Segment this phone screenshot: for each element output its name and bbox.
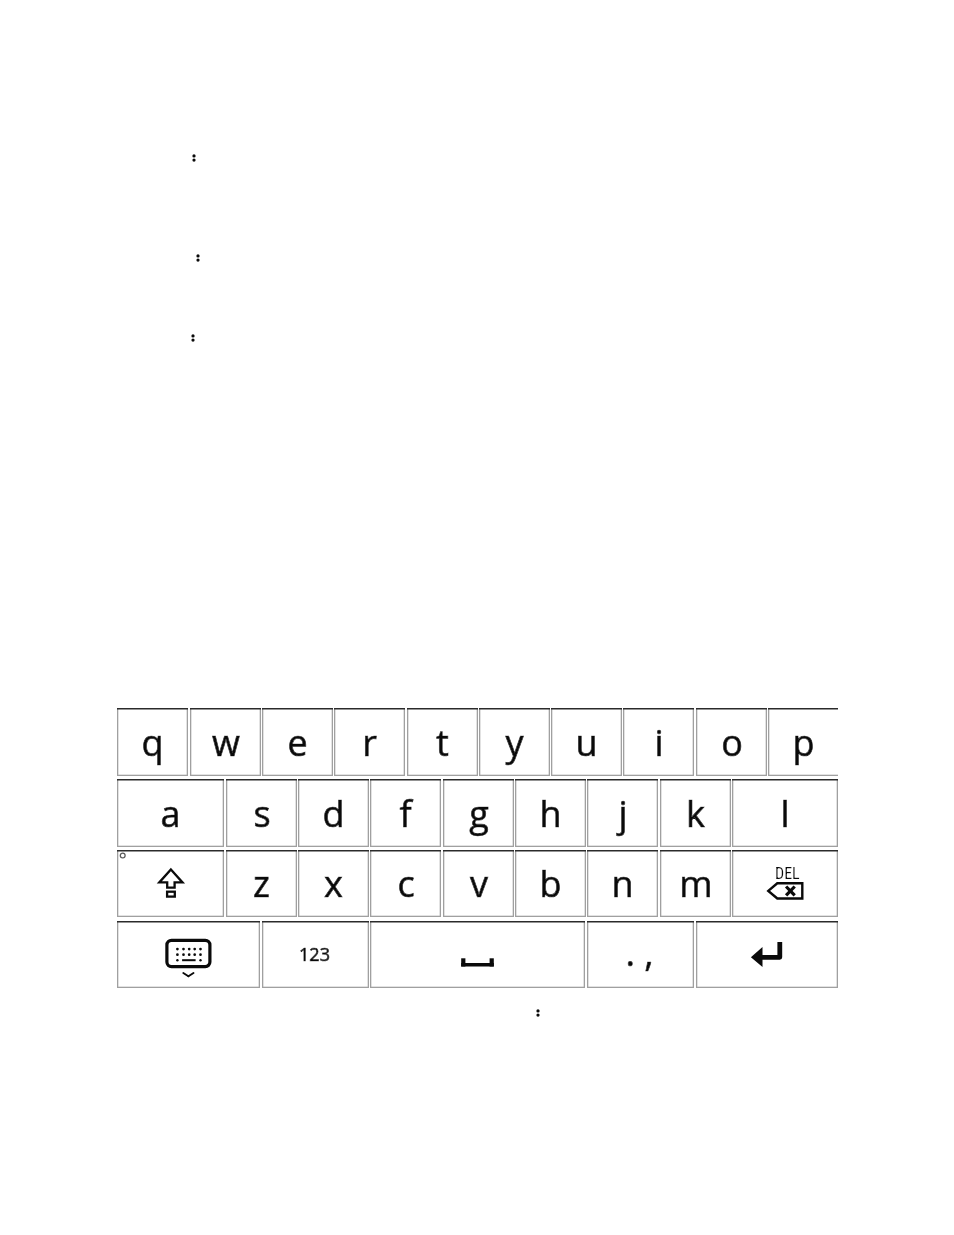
button[interactable]: y — [479, 708, 550, 776]
button[interactable]: Shift — [117, 850, 224, 917]
staticText: v — [470, 859, 488, 908]
staticText: p — [792, 718, 815, 767]
staticText: 123 — [299, 942, 330, 967]
staticText: c — [397, 859, 415, 908]
staticText: DEL — [775, 864, 800, 883]
staticText: o — [721, 718, 743, 767]
staticText: j — [618, 789, 628, 838]
staticText: t — [436, 718, 449, 767]
other: : — [187, 330, 199, 346]
button[interactable]: o — [696, 708, 767, 776]
staticText: 123 — [299, 942, 330, 967]
staticText: d — [322, 789, 345, 838]
staticText: a — [160, 789, 181, 838]
staticText: b — [539, 859, 562, 908]
staticText: f — [399, 789, 412, 838]
button[interactable]: Numbers and symbols — [262, 921, 369, 988]
button[interactable]: u — [551, 708, 622, 776]
staticText: m — [679, 859, 713, 908]
button[interactable]: h — [515, 779, 586, 847]
staticText: i — [654, 718, 664, 767]
button[interactable]: p — [768, 708, 838, 776]
button[interactable]: x — [298, 850, 369, 917]
staticText: k — [686, 789, 705, 838]
staticText: l — [780, 789, 790, 838]
staticText: o — [721, 718, 743, 767]
staticText: g — [469, 789, 489, 838]
button[interactable]: a — [117, 779, 224, 847]
button[interactable]: v — [443, 850, 514, 917]
button[interactable]: r — [334, 708, 405, 776]
staticText: t — [436, 718, 449, 767]
staticText: s — [253, 789, 271, 838]
other: : — [192, 250, 204, 266]
button[interactable]: m — [660, 850, 731, 917]
staticText: y — [505, 718, 524, 767]
staticText: g — [469, 789, 489, 838]
staticText: l — [780, 789, 790, 838]
staticText: r — [362, 718, 377, 767]
staticText: w — [212, 718, 240, 767]
button[interactable]: l — [732, 779, 838, 847]
staticText: r — [362, 718, 377, 767]
staticText: e — [287, 718, 308, 767]
button[interactable]: q — [117, 708, 188, 776]
staticText: . , — [625, 928, 654, 977]
button[interactable]: f — [370, 779, 441, 847]
staticText: x — [324, 859, 343, 908]
staticText: h — [539, 789, 562, 838]
other: : — [188, 150, 200, 166]
staticText: h — [539, 789, 562, 838]
staticText: j — [618, 789, 628, 838]
button[interactable]: Space — [370, 921, 585, 988]
button[interactable]: t — [407, 708, 478, 776]
staticText: z — [253, 859, 270, 908]
button[interactable]: b — [515, 850, 586, 917]
staticText: k — [686, 789, 705, 838]
staticText: s — [253, 789, 271, 838]
staticText: d — [322, 789, 345, 838]
staticText: p — [792, 718, 815, 767]
button[interactable]: w — [190, 708, 261, 776]
button[interactable]: g — [443, 779, 514, 847]
staticText: e — [287, 718, 308, 767]
staticText: n — [611, 859, 634, 908]
button[interactable]: e — [262, 708, 333, 776]
button[interactable]: j — [587, 779, 658, 847]
button[interactable]: k — [660, 779, 731, 847]
staticText: z — [253, 859, 270, 908]
button[interactable]: n — [587, 850, 658, 917]
button[interactable]: Enter — [696, 921, 838, 988]
staticText: n — [611, 859, 634, 908]
staticText: a — [160, 789, 181, 838]
button[interactable]: c — [370, 850, 441, 917]
staticText: q — [141, 718, 164, 767]
button[interactable]: i — [623, 708, 694, 776]
button[interactable]: Delete — [732, 850, 838, 917]
staticText: i — [654, 718, 664, 767]
staticText: x — [324, 859, 343, 908]
button[interactable]: Hide keyboard — [117, 921, 260, 988]
staticText: w — [212, 718, 240, 767]
staticText: q — [141, 718, 164, 767]
staticText: m — [679, 859, 713, 908]
staticText: . , — [625, 928, 654, 977]
staticText: y — [505, 718, 524, 767]
button[interactable]: s — [226, 779, 297, 847]
button[interactable]: Period and comma — [587, 921, 694, 988]
other: : — [532, 1005, 544, 1021]
staticText: u — [575, 718, 598, 767]
staticText: u — [575, 718, 598, 767]
button[interactable]: d — [298, 779, 369, 847]
staticText: b — [539, 859, 562, 908]
staticText: c — [397, 859, 415, 908]
staticText: v — [470, 859, 488, 908]
staticText: f — [399, 789, 412, 838]
button[interactable]: z — [226, 850, 297, 917]
